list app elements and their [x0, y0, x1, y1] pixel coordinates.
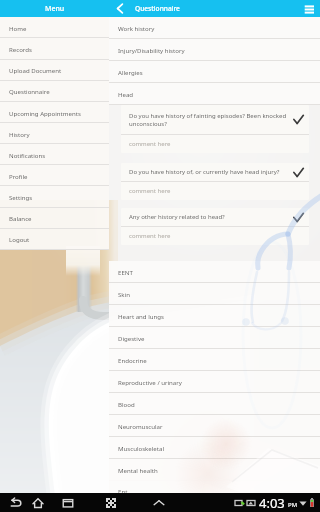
button[interactable]: Questionnaire: [0, 80, 109, 101]
button[interactable]: Back: [8, 493, 24, 512]
button[interactable]: comment here: [121, 135, 309, 153]
button[interactable]: Neuromuscular: [109, 415, 320, 437]
button[interactable]: Notifications: [0, 144, 109, 165]
staticText: Notifications: [9, 151, 46, 159]
button[interactable]: Do you have history of, or currently hav…: [121, 163, 309, 181]
button[interactable]: Expand navigation bar: [151, 493, 167, 512]
staticText: Neuromuscular: [118, 422, 163, 430]
button[interactable]: Menu: [0, 0, 109, 17]
staticText: Questionnaire: [9, 87, 50, 95]
button[interactable]: comment here: [121, 227, 309, 245]
button[interactable]: Records: [0, 38, 109, 59]
button[interactable]: Upload Document: [0, 59, 109, 80]
button[interactable]: Settings: [0, 186, 109, 207]
staticText: Ent: [118, 487, 128, 495]
button[interactable]: Back: [109, 0, 129, 17]
button[interactable]: Musculoskeletal: [109, 437, 320, 459]
staticText: Head: [118, 90, 134, 98]
staticText: comment here: [129, 232, 171, 240]
button[interactable]: Home: [30, 493, 46, 512]
staticText: Work history: [118, 24, 155, 32]
staticText: Profile: [9, 172, 28, 180]
button[interactable]: Recent apps: [60, 493, 76, 512]
button[interactable]: comment here: [121, 182, 309, 200]
button[interactable]: Reproductive / urinary: [109, 371, 320, 393]
staticText: Reproductive / urinary: [118, 378, 182, 386]
button[interactable]: Endocrine: [109, 349, 320, 371]
button[interactable]: Head: [109, 83, 320, 105]
staticText: Do you have history of fainting episodes…: [129, 112, 287, 128]
staticText: History: [9, 130, 30, 138]
staticText: Logout: [9, 235, 30, 243]
button[interactable]: Heart and lungs: [109, 305, 320, 327]
button[interactable]: Home: [0, 17, 109, 38]
button[interactable]: Do you have history of fainting episodes…: [121, 105, 309, 134]
button[interactable]: Allergies: [109, 61, 320, 83]
staticText: Mental health: [118, 466, 158, 474]
staticText: comment here: [129, 140, 171, 148]
button[interactable]: Skin: [109, 283, 320, 305]
staticText: Settings: [9, 193, 33, 201]
staticText: Menu: [45, 4, 65, 14]
staticText: Questionnaire: [135, 4, 180, 13]
staticText: EENT: [118, 268, 133, 276]
button[interactable]: Work history: [109, 17, 320, 39]
staticText: Digestive: [118, 334, 145, 342]
button[interactable]: Logout: [0, 228, 109, 249]
staticText: Injury/Disability history: [118, 46, 185, 54]
button[interactable]: Any other history related to head?: [121, 208, 309, 226]
staticText: Heart and lungs: [118, 312, 164, 320]
staticText: Endocrine: [118, 356, 147, 364]
staticText: Upload Document: [9, 66, 62, 74]
staticText: Records: [9, 45, 32, 53]
button[interactable]: Open menu: [300, 0, 320, 17]
staticText: Skin: [118, 290, 130, 298]
button[interactable]: EENT: [109, 261, 320, 283]
button[interactable]: Injury/Disability history: [109, 39, 320, 61]
staticText: Upcoming Appointments: [9, 109, 81, 117]
staticText: Musculoskeletal: [118, 444, 164, 452]
button[interactable]: Upcoming Appointments: [0, 102, 109, 123]
staticText: PM: [288, 501, 298, 509]
button[interactable]: Balance: [0, 207, 109, 228]
button[interactable]: Mental health: [109, 459, 320, 481]
staticText: Balance: [9, 214, 32, 222]
staticText: comment here: [129, 187, 171, 195]
button[interactable]: Blood: [109, 393, 320, 415]
button[interactable]: History: [0, 123, 109, 144]
button[interactable]: Ent: [109, 480, 320, 502]
button[interactable]: Screenshot: [103, 493, 119, 512]
button[interactable]: Digestive: [109, 327, 320, 349]
staticText: 4:03: [259, 494, 285, 512]
staticText: Do you have history of, or currently hav…: [129, 168, 287, 176]
staticText: Blood: [118, 400, 135, 408]
button[interactable]: Profile: [0, 165, 109, 186]
staticText: Any other history related to head?: [129, 213, 287, 221]
staticText: Home: [9, 24, 27, 32]
staticText: Allergies: [118, 68, 143, 76]
